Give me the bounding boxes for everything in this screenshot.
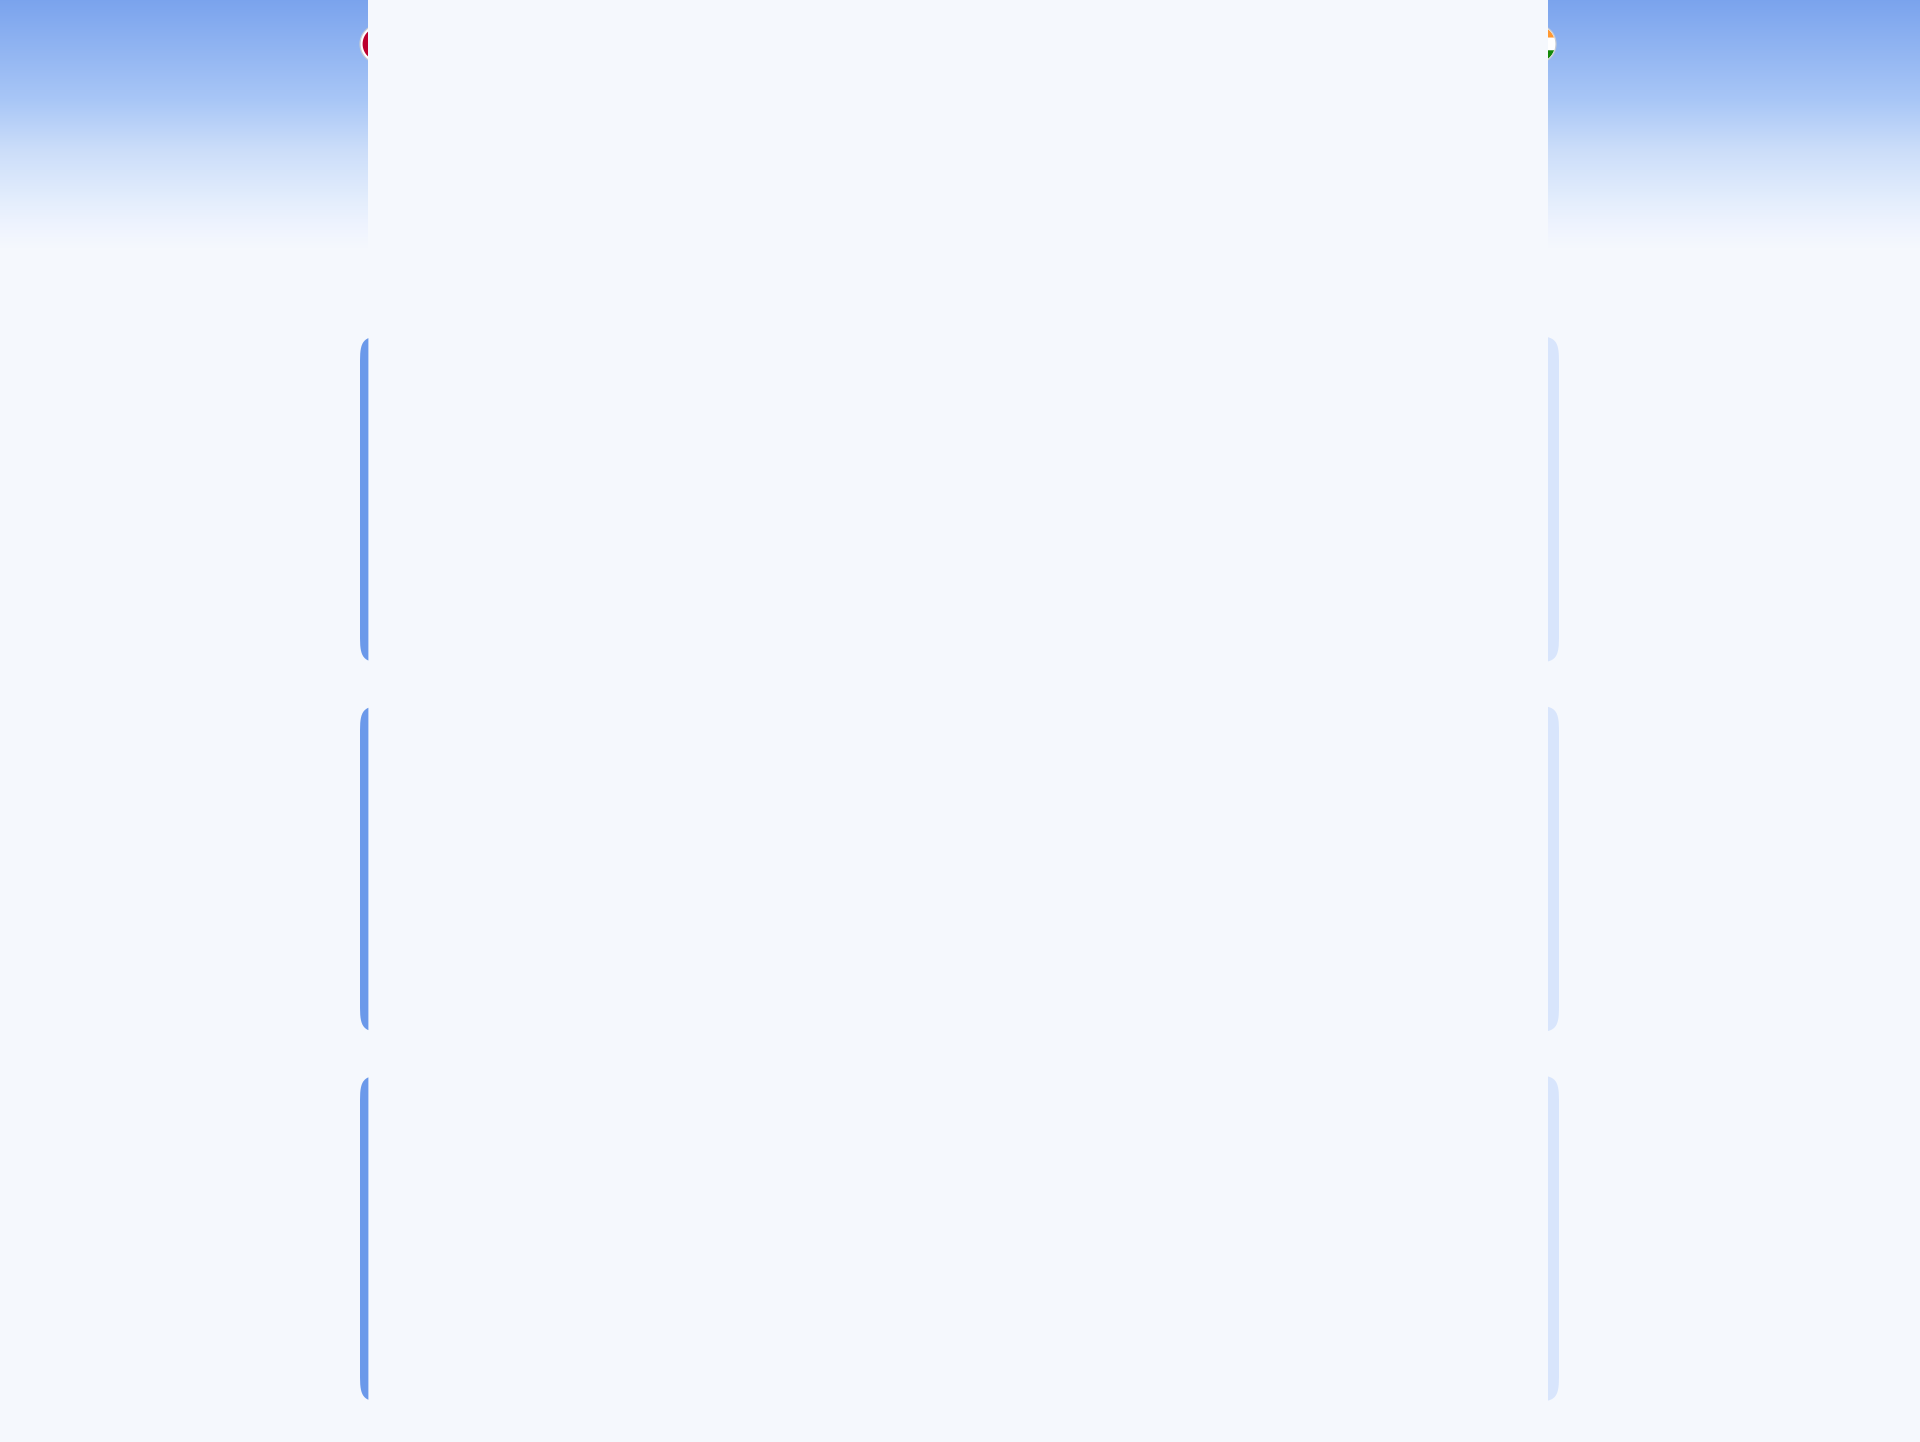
- button[interactable]: Source currency: Japanese yen: [360, 24, 399, 64]
- button[interactable]: Conversion card 2: [360, 706, 1559, 1032]
- button[interactable]: Conversion card 1: [360, 336, 1559, 663]
- button[interactable]: Conversion card 3: [360, 1075, 1559, 1402]
- button[interactable]: Destination currency: Indian rupee: [1517, 24, 1556, 64]
